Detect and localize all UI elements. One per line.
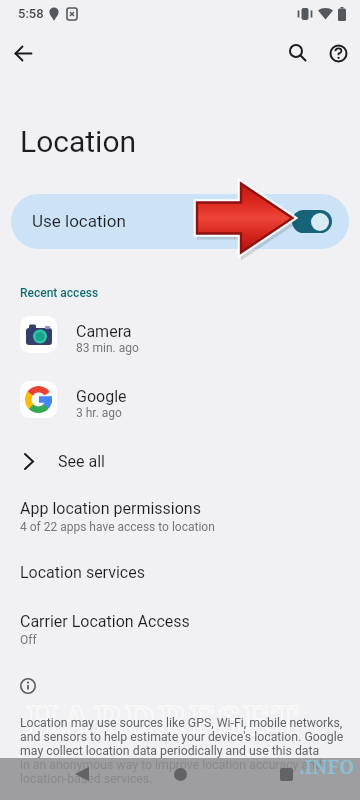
- staticText: Off: [20, 633, 37, 647]
- staticText: Location services: [20, 563, 145, 582]
- button[interactable]: Carrier Location Access: [0, 612, 360, 647]
- staticText: 5:58: [18, 6, 44, 21]
- staticText: 4 of 22 apps have access to location: [20, 520, 215, 534]
- staticText: .INFO: [299, 754, 354, 780]
- staticText: 83 min. ago: [76, 341, 139, 355]
- button[interactable]: [160, 758, 200, 790]
- button[interactable]: See all: [0, 443, 360, 479]
- button[interactable]: Location services: [0, 563, 360, 582]
- staticText: Carrier Location Access: [20, 612, 190, 631]
- staticText: Google: [76, 387, 127, 406]
- button[interactable]: [279, 34, 317, 72]
- button[interactable]: Google: [0, 374, 360, 424]
- staticText: See all: [58, 452, 105, 471]
- staticText: 3 hr. ago: [76, 406, 122, 420]
- staticText: Location: [20, 124, 137, 159]
- staticText: App location permissions: [20, 499, 201, 518]
- button[interactable]: [266, 758, 306, 790]
- staticText: Camera: [76, 322, 132, 341]
- button[interactable]: [4, 34, 42, 72]
- button[interactable]: Use location: [11, 194, 349, 249]
- staticText: Location may use sources like GPS, Wi-Fi…: [20, 716, 344, 786]
- button[interactable]: [319, 34, 357, 72]
- staticText: Recent access: [20, 286, 99, 300]
- button[interactable]: Camera: [0, 309, 360, 359]
- button[interactable]: [62, 758, 102, 790]
- staticText: Use location: [32, 211, 126, 231]
- staticText: HARDRESET: [26, 692, 301, 746]
- button[interactable]: App location permissions: [0, 499, 360, 534]
